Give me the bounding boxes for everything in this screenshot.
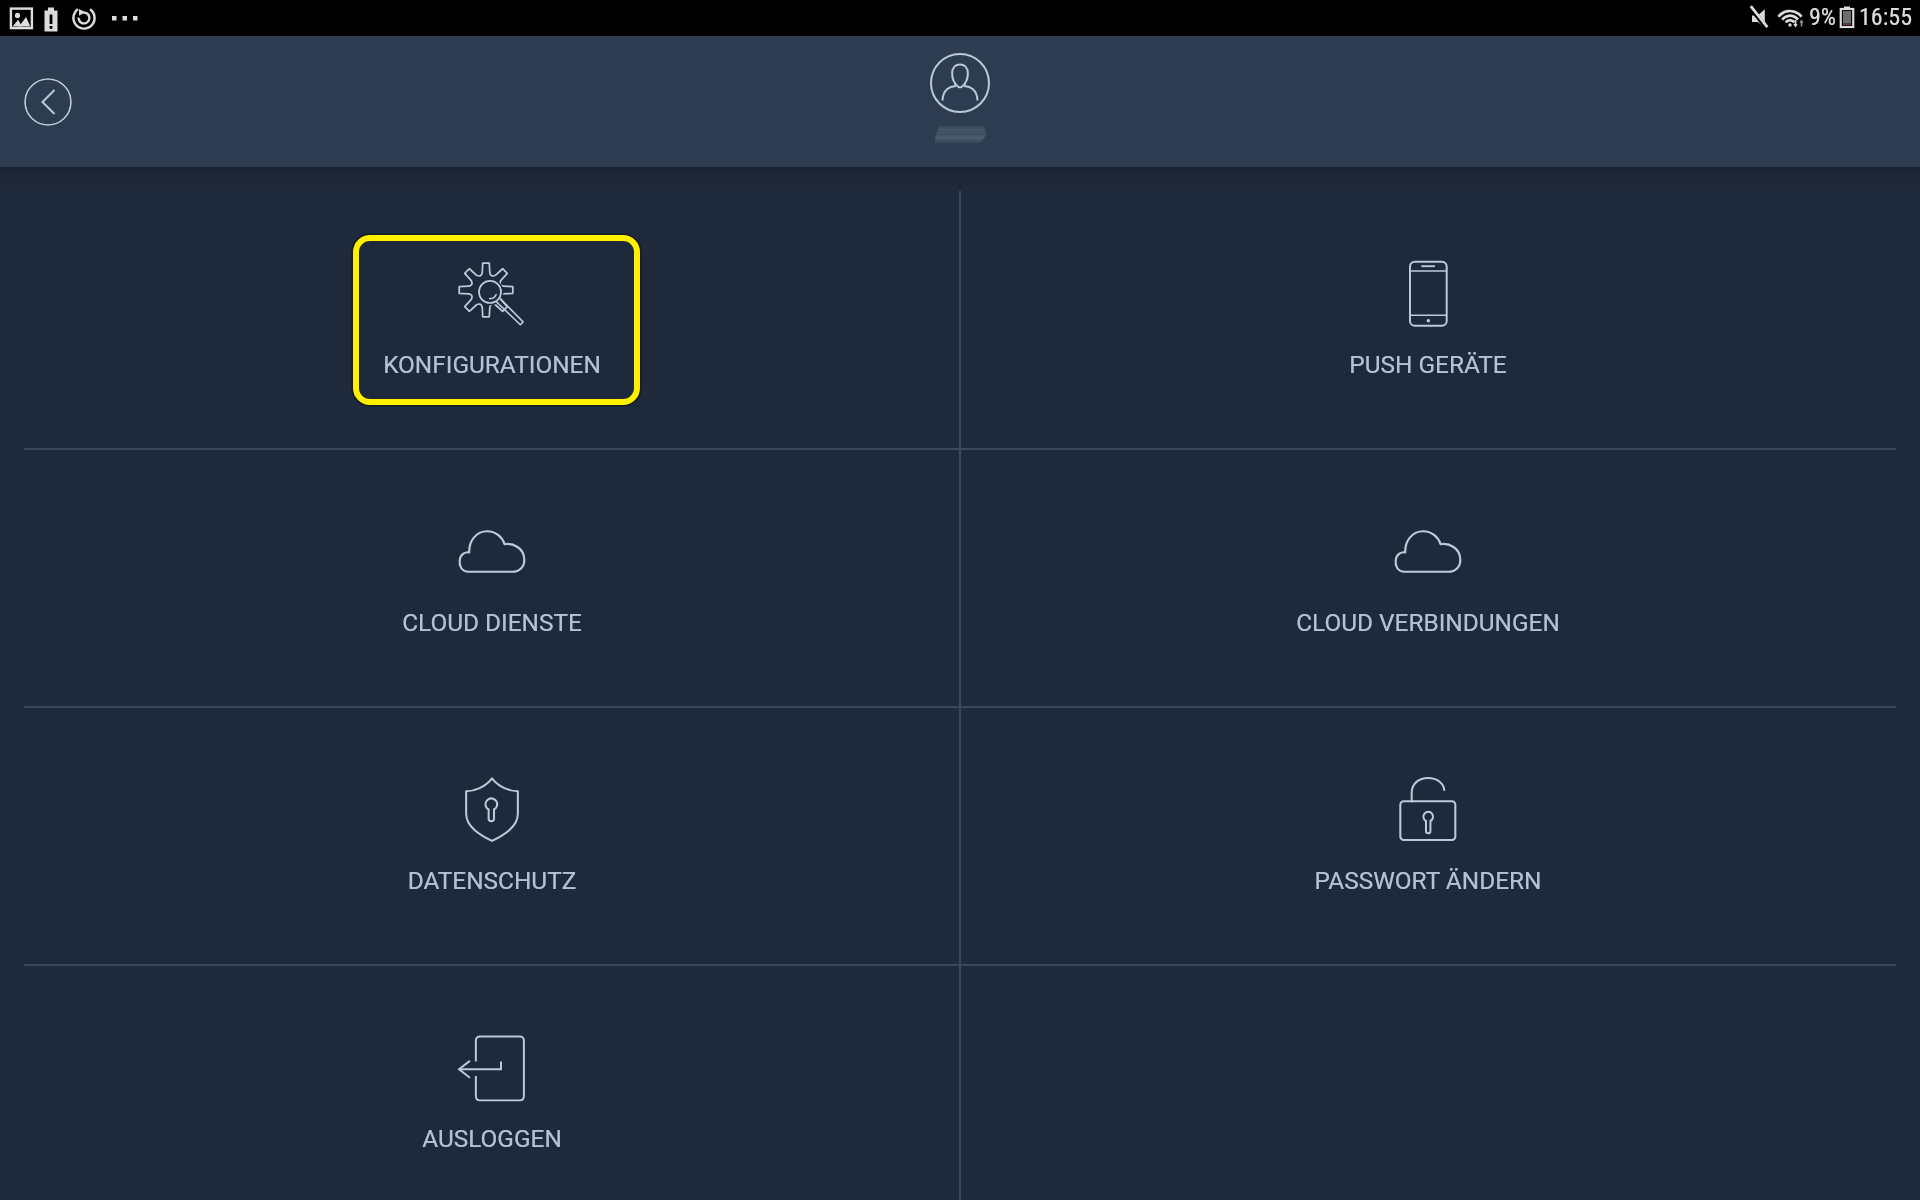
staticText: 9%	[1809, 3, 1837, 31]
button[interactable]: KONFIGURATIONEN	[24, 191, 960, 449]
button[interactable]: PASSWORT ÄNDERN	[960, 707, 1896, 965]
button[interactable]: CLOUD DIENSTE	[24, 449, 960, 707]
button[interactable]: AUSLOGGEN	[24, 965, 960, 1200]
staticText: KONFIGURATIONEN	[24, 350, 960, 379]
staticText: AUSLOGGEN	[24, 1124, 960, 1153]
staticText: 16:55	[1859, 3, 1912, 31]
staticText: DATENSCHUTZ	[24, 866, 960, 895]
staticText: PASSWORT ÄNDERN	[960, 866, 1896, 895]
button[interactable]: PUSH GERÄTE	[960, 191, 1896, 449]
staticText: CLOUD VERBINDUNGEN	[960, 608, 1896, 637]
staticText: PUSH GERÄTE	[960, 350, 1896, 379]
staticText: CLOUD DIENSTE	[24, 608, 960, 637]
button[interactable]: CLOUD VERBINDUNGEN	[960, 449, 1896, 707]
button[interactable]: Back	[24, 78, 72, 126]
button[interactable]: DATENSCHUTZ	[24, 707, 960, 965]
button[interactable]: Account	[912, 44, 1008, 156]
